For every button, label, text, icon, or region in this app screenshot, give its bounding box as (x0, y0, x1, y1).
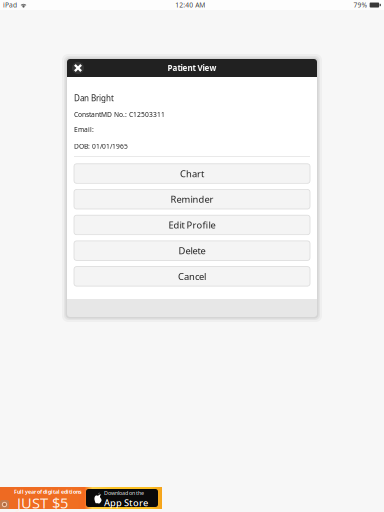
staticText: Chart (180, 167, 204, 180)
staticText: Edit Profile (168, 219, 215, 231)
button[interactable]: Delete (74, 241, 310, 260)
staticText: Reminder (170, 193, 213, 205)
staticText: JUST $5 (17, 493, 68, 512)
staticText: Patient View (167, 63, 216, 73)
button[interactable]: Chart (74, 164, 310, 183)
staticText: Delete (178, 244, 205, 257)
button[interactable]: Close (67, 59, 89, 77)
button[interactable]: Ad: Full year of digital editions, just … (0, 487, 162, 509)
staticText: iPad (3, 1, 17, 9)
staticText: Cancel (178, 270, 206, 283)
staticText: Full year of digital editions (14, 488, 82, 495)
button[interactable]: Edit Profile (74, 215, 310, 235)
staticText: 79% (353, 1, 367, 9)
staticText: App Store (104, 496, 148, 509)
button[interactable]: Cancel (74, 267, 310, 286)
staticText: Dan Bright (74, 93, 114, 103)
staticText: DOB: 01/01/1965 (74, 142, 128, 151)
button[interactable]: Reminder (74, 189, 310, 209)
staticText: 12:40 AM (175, 1, 205, 9)
staticText: Email: (74, 125, 94, 134)
staticText: Download on the (104, 489, 144, 496)
staticText: ConstantMD No.: C12503311 (74, 110, 165, 119)
